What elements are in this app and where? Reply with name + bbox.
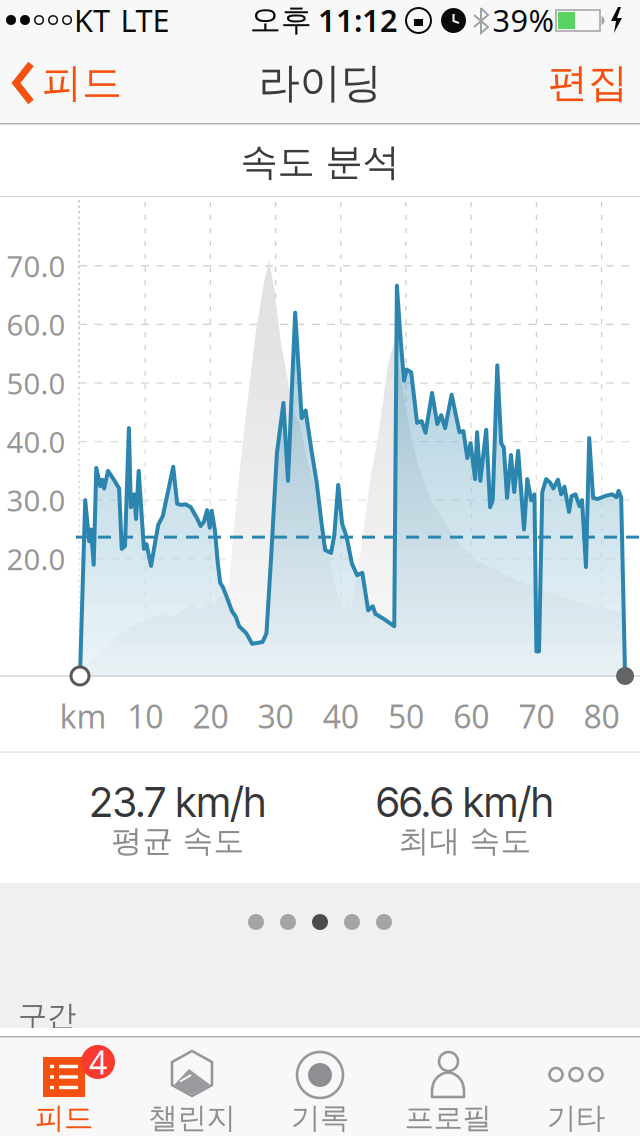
staticText: 11:12 bbox=[318, 0, 398, 40]
staticText: 60 bbox=[453, 695, 489, 737]
staticText: 평균 속도 bbox=[111, 822, 244, 860]
staticText: 60.0 bbox=[6, 305, 65, 344]
staticText: 구간 bbox=[18, 998, 76, 1034]
staticText: 라이딩 bbox=[258, 58, 381, 108]
staticText: 40.0 bbox=[6, 422, 65, 461]
staticText: 기록 bbox=[291, 1100, 349, 1136]
button[interactable]: 편집 bbox=[543, 53, 633, 113]
staticText: 최대 속도 bbox=[398, 822, 531, 860]
button[interactable]: 기록 bbox=[256, 1036, 384, 1136]
button[interactable]: 프로필 bbox=[384, 1036, 512, 1136]
staticText: 66.6 km/h bbox=[376, 777, 554, 827]
button[interactable]: 기타 bbox=[512, 1036, 640, 1136]
staticText: 80 bbox=[584, 695, 620, 737]
staticText: KT bbox=[74, 0, 110, 40]
staticText: 피드 bbox=[42, 58, 122, 107]
staticText: 속도 분석 bbox=[240, 139, 399, 185]
staticText: 편집 bbox=[548, 58, 628, 107]
staticText: 70 bbox=[518, 695, 554, 737]
button[interactable]: 피드 bbox=[3, 53, 123, 113]
staticText: 20 bbox=[192, 695, 228, 737]
staticText: 23.7 km/h bbox=[89, 777, 266, 827]
staticText: 50 bbox=[388, 695, 424, 737]
staticText: 40 bbox=[323, 695, 359, 737]
staticText: 30.0 bbox=[6, 481, 65, 520]
staticText: km bbox=[59, 695, 106, 737]
staticText: 30 bbox=[258, 695, 294, 737]
staticText: 39% bbox=[492, 0, 553, 40]
staticText: 피드 bbox=[35, 1100, 93, 1136]
staticText: 10 bbox=[127, 695, 163, 737]
staticText: 4 bbox=[89, 1041, 107, 1083]
staticText: 프로필 bbox=[404, 1100, 491, 1136]
staticText: 50.0 bbox=[6, 363, 65, 402]
staticText: 오후 bbox=[250, 1, 312, 39]
staticText: 챌린지 bbox=[148, 1100, 235, 1136]
button[interactable]: 4 bbox=[0, 1036, 128, 1136]
staticText: 70.0 bbox=[6, 246, 65, 285]
staticText: LTE bbox=[120, 0, 169, 40]
button[interactable]: 챌린지 bbox=[128, 1036, 256, 1136]
staticText: 기타 bbox=[547, 1100, 605, 1136]
staticText: 20.0 bbox=[6, 539, 65, 578]
